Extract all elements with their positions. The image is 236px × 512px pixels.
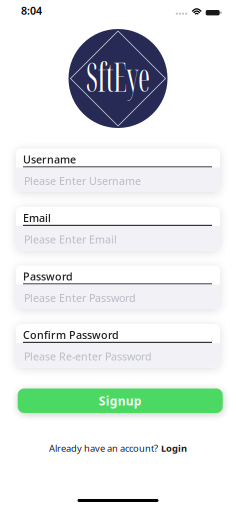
staticText: Confirm Password bbox=[23, 328, 119, 342]
staticText: Please Re-enter Password bbox=[24, 349, 152, 363]
button[interactable]: Confirm Password bbox=[16, 324, 220, 367]
staticText: 8:04 bbox=[21, 3, 42, 18]
staticText: Please Enter Username bbox=[24, 174, 141, 188]
staticText: Email bbox=[23, 211, 51, 225]
staticText: Username bbox=[23, 152, 76, 166]
button[interactable]: Username bbox=[16, 148, 220, 192]
button[interactable]: Email bbox=[16, 207, 220, 250]
button[interactable]: Login bbox=[161, 442, 187, 454]
staticText: Please Enter Password bbox=[24, 291, 136, 305]
staticText: Already have an account? bbox=[49, 442, 158, 454]
staticText: SftEye bbox=[71, 50, 164, 102]
staticText: Please Enter Email bbox=[24, 232, 117, 246]
staticText: Password bbox=[23, 269, 73, 283]
button[interactable]: Signup bbox=[15, 388, 220, 413]
button[interactable]: Password bbox=[16, 265, 220, 309]
staticText: Login bbox=[161, 442, 187, 454]
staticText: Signup bbox=[99, 393, 142, 409]
